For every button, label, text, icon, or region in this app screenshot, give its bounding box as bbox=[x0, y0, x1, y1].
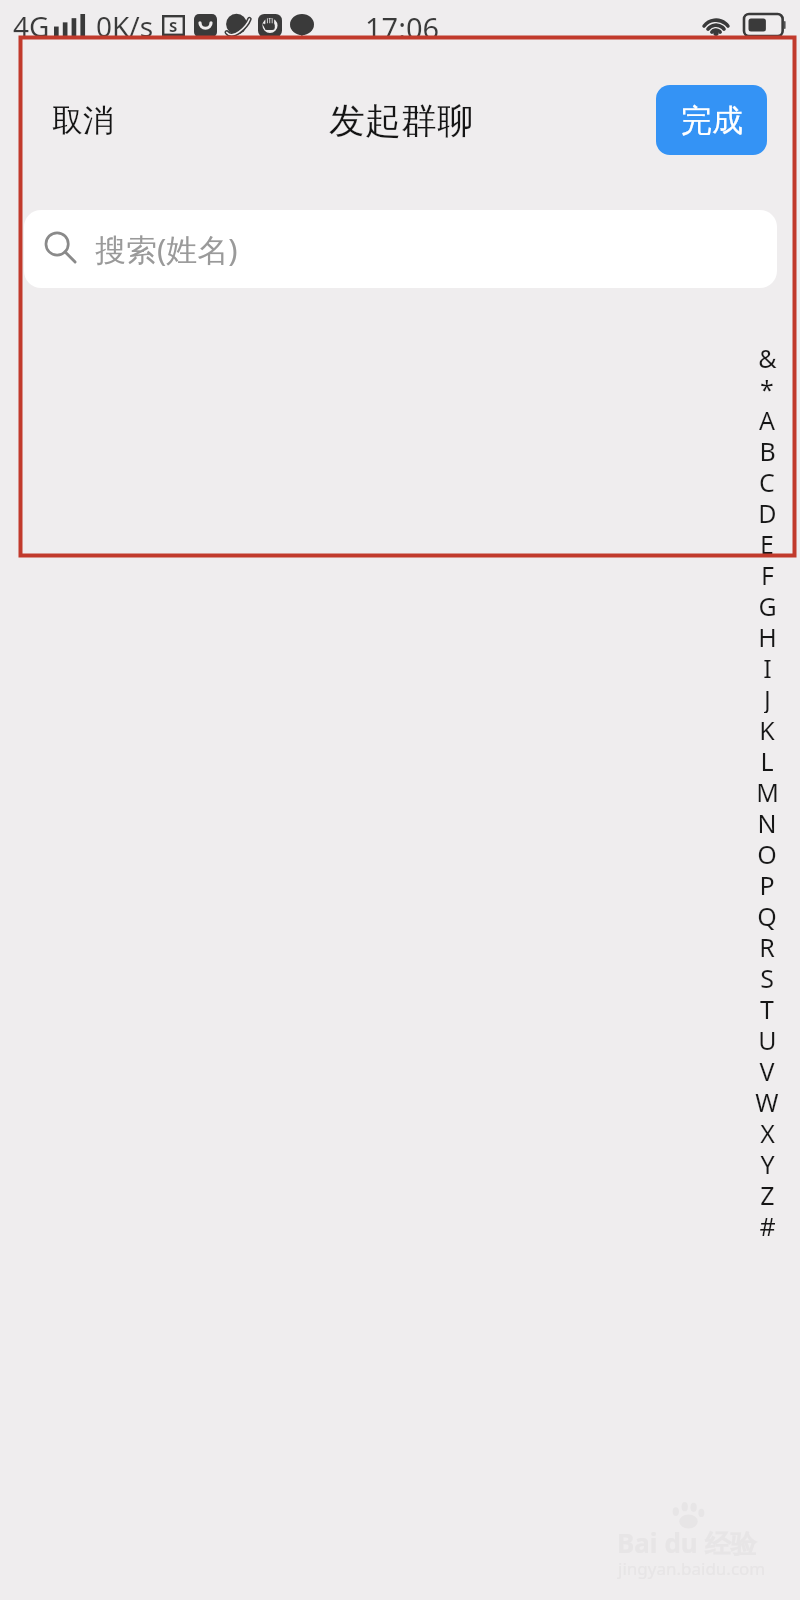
staticText: 4G bbox=[13, 7, 50, 45]
button[interactable]: J bbox=[751, 682, 783, 713]
button[interactable]: P bbox=[751, 868, 783, 899]
button[interactable]: R bbox=[751, 930, 783, 961]
staticText: Y bbox=[760, 1147, 775, 1178]
button[interactable]: G bbox=[751, 589, 783, 620]
button[interactable]: A bbox=[751, 403, 783, 434]
other: Alphabet index bbox=[751, 341, 783, 1240]
staticText: V bbox=[759, 1054, 775, 1085]
staticText: & bbox=[758, 341, 777, 372]
staticText: K bbox=[759, 713, 775, 744]
staticText: Bai du 经验 bbox=[617, 1525, 757, 1561]
button[interactable]: X bbox=[751, 1116, 783, 1147]
staticText: 发起群聊 bbox=[329, 98, 473, 143]
staticText: T bbox=[760, 992, 774, 1023]
staticText: 0K/s bbox=[96, 7, 154, 45]
staticText: S bbox=[760, 961, 774, 992]
button[interactable]: E bbox=[751, 527, 783, 558]
staticText: F bbox=[761, 558, 774, 589]
staticText: R bbox=[759, 930, 775, 961]
staticText: W bbox=[755, 1085, 779, 1116]
staticText: E bbox=[760, 527, 774, 558]
staticText: 搜索(姓名) bbox=[95, 228, 238, 270]
staticText: Q bbox=[757, 899, 777, 930]
button[interactable]: O bbox=[751, 837, 783, 868]
staticText: 完成 bbox=[681, 101, 743, 140]
button[interactable]: K bbox=[751, 713, 783, 744]
button[interactable]: 取消 bbox=[42, 87, 124, 154]
staticText: P bbox=[759, 868, 775, 899]
staticText: I bbox=[763, 651, 772, 682]
staticText: U bbox=[758, 1023, 777, 1054]
staticText: G bbox=[758, 589, 777, 620]
staticText: B bbox=[759, 434, 776, 465]
button[interactable]: # bbox=[751, 1209, 783, 1240]
staticText: # bbox=[759, 1209, 776, 1240]
staticText: O bbox=[757, 837, 777, 868]
button[interactable]: M bbox=[751, 775, 783, 806]
button[interactable]: H bbox=[751, 620, 783, 651]
button[interactable]: 完成 bbox=[656, 85, 767, 155]
staticText: Z bbox=[760, 1178, 775, 1209]
staticText: J bbox=[764, 682, 771, 713]
button[interactable]: W bbox=[751, 1085, 783, 1116]
button[interactable]: I bbox=[751, 651, 783, 682]
button[interactable]: F bbox=[751, 558, 783, 589]
button[interactable]: T bbox=[751, 992, 783, 1023]
staticText: X bbox=[760, 1116, 775, 1147]
button[interactable]: D bbox=[751, 496, 783, 527]
button[interactable]: L bbox=[751, 744, 783, 775]
staticText: S bbox=[169, 16, 178, 36]
button[interactable]: Q bbox=[751, 899, 783, 930]
staticText: A bbox=[759, 403, 775, 434]
staticText: C bbox=[759, 465, 775, 496]
staticText: * bbox=[760, 372, 774, 403]
button[interactable]: V bbox=[751, 1054, 783, 1085]
button[interactable]: B bbox=[751, 434, 783, 465]
button[interactable]: * bbox=[751, 372, 783, 403]
button[interactable]: U bbox=[751, 1023, 783, 1054]
staticText: 17:06 bbox=[365, 8, 440, 47]
button[interactable]: S bbox=[751, 961, 783, 992]
staticText: N bbox=[757, 806, 777, 837]
staticText: D bbox=[758, 496, 777, 527]
staticText: 取消 bbox=[52, 101, 114, 140]
button[interactable]: N bbox=[751, 806, 783, 837]
button[interactable]: C bbox=[751, 465, 783, 496]
button[interactable]: Y bbox=[751, 1147, 783, 1178]
staticText: M bbox=[756, 775, 779, 806]
button[interactable]: & bbox=[751, 341, 783, 372]
button[interactable]: Z bbox=[751, 1178, 783, 1209]
staticText: H bbox=[758, 620, 777, 651]
button[interactable]: 搜索(姓名) bbox=[24, 210, 777, 288]
staticText: L bbox=[760, 744, 774, 775]
